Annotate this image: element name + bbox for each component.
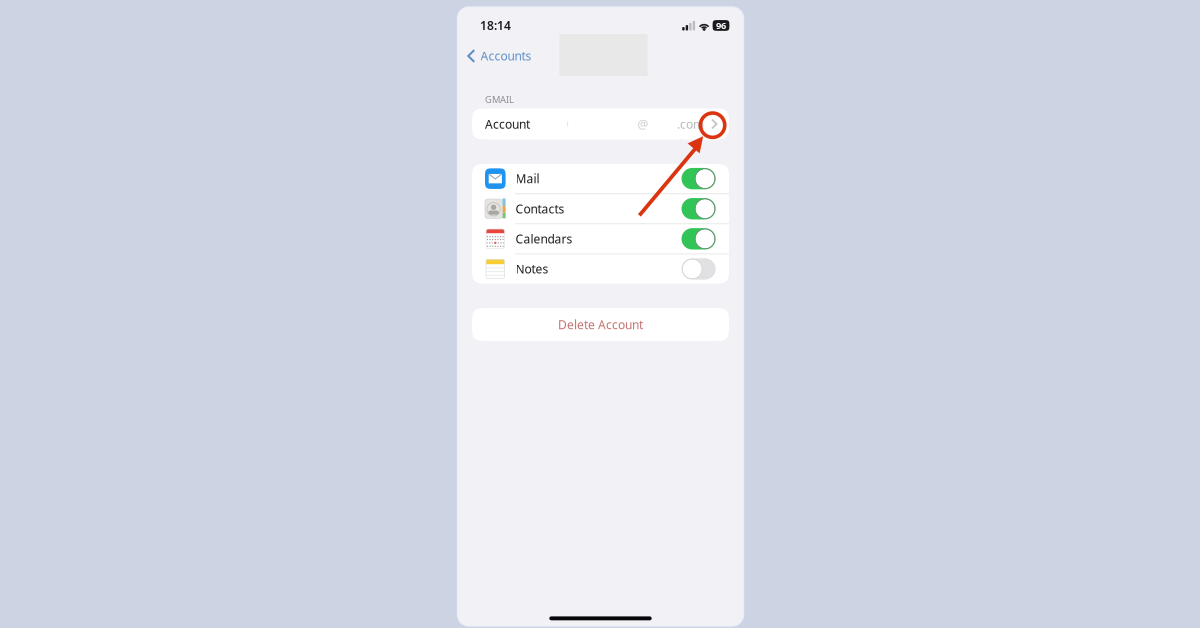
- button[interactable]: Calendars: [472, 224, 729, 253]
- staticText: Notes: [516, 261, 549, 277]
- staticText: Mail: [516, 171, 540, 187]
- staticText: GMAIL: [485, 93, 514, 105]
- staticText: 18:14: [480, 17, 511, 33]
- button[interactable]: Mail: [472, 164, 729, 193]
- staticText: Account: [485, 116, 530, 132]
- staticText: .com: [677, 116, 704, 132]
- staticText: Accounts: [481, 48, 532, 64]
- staticText: Delete Account: [558, 317, 643, 332]
- button[interactable]: Notes: [472, 254, 729, 284]
- staticText: 96: [716, 19, 726, 32]
- staticText: Calendars: [516, 231, 573, 247]
- button[interactable]: Account: [472, 108, 729, 139]
- button[interactable]: Accounts: [458, 41, 540, 71]
- staticText: @: [638, 116, 649, 132]
- staticText: Contacts: [516, 201, 565, 217]
- button[interactable]: Delete Account: [472, 308, 729, 341]
- button[interactable]: Contacts: [472, 194, 729, 223]
